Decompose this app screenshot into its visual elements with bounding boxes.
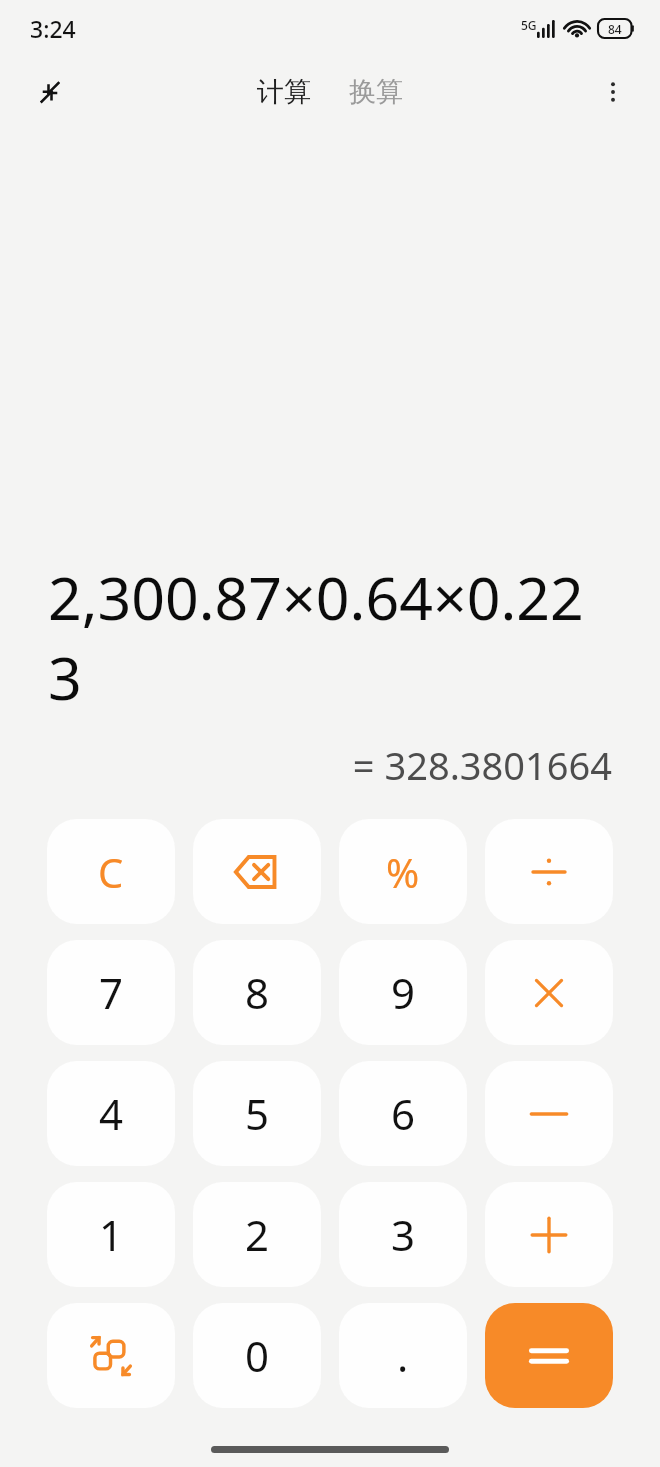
- staticText: 4: [99, 1085, 124, 1142]
- staticText: %: [386, 845, 420, 899]
- staticText: 9: [391, 964, 416, 1021]
- button[interactable]: Clear: [47, 819, 175, 924]
- button[interactable]: Multiply: [485, 940, 613, 1045]
- staticText: 换算: [349, 75, 403, 109]
- button[interactable]: 2: [193, 1182, 321, 1287]
- button[interactable]: Collapse: [22, 64, 78, 120]
- button[interactable]: 计算: [251, 69, 317, 115]
- button[interactable]: 8: [193, 940, 321, 1045]
- staticText: 7: [99, 964, 124, 1021]
- staticText: .: [397, 1327, 409, 1384]
- staticText: 5G: [521, 17, 537, 33]
- button[interactable]: 换算: [343, 69, 409, 115]
- staticText: 计算: [257, 75, 311, 109]
- button[interactable]: 3: [339, 1182, 467, 1287]
- button[interactable]: 1: [47, 1182, 175, 1287]
- staticText: C: [98, 845, 124, 899]
- button[interactable]: 0: [193, 1303, 321, 1408]
- staticText: 2,300.87×0.64×0.223: [48, 557, 612, 717]
- button[interactable]: Percent: [339, 819, 467, 924]
- staticText: 3:24: [30, 13, 76, 44]
- staticText: = 328.3801664: [48, 739, 612, 791]
- staticText: 3: [391, 1206, 416, 1263]
- staticText: 1: [99, 1206, 124, 1263]
- button[interactable]: Minus: [485, 1061, 613, 1166]
- staticText: 2: [245, 1206, 270, 1263]
- staticText: 8: [245, 964, 270, 1021]
- button[interactable]: 7: [47, 940, 175, 1045]
- staticText: 6: [391, 1085, 416, 1142]
- button[interactable]: Decimal point: [339, 1303, 467, 1408]
- button[interactable]: Backspace: [193, 819, 321, 924]
- button[interactable]: 9: [339, 940, 467, 1045]
- button[interactable]: More options: [586, 65, 640, 119]
- button[interactable]: Equals: [485, 1303, 613, 1408]
- staticText: 0: [245, 1327, 270, 1384]
- button[interactable]: 5: [193, 1061, 321, 1166]
- button[interactable]: Divide: [485, 819, 613, 924]
- button[interactable]: Unit converter: [47, 1303, 175, 1408]
- staticText: 5: [245, 1085, 270, 1142]
- button[interactable]: 4: [47, 1061, 175, 1166]
- button[interactable]: 6: [339, 1061, 467, 1166]
- button[interactable]: Plus: [485, 1182, 613, 1287]
- staticText: 84: [608, 21, 622, 37]
